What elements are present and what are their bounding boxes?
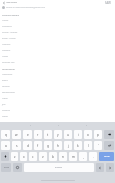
staticText: b (52, 155, 54, 159)
staticText: p (97, 133, 99, 137)
staticText: h (57, 144, 59, 148)
staticText: n (62, 155, 64, 159)
staticText: d (27, 144, 29, 148)
staticText: Other (2, 115, 8, 118)
staticText: Company (2, 25, 12, 28)
button[interactable]: j (64, 141, 72, 150)
staticText: i (78, 133, 79, 137)
button[interactable]: Custom (0, 107, 115, 113)
button[interactable]: g (44, 141, 52, 150)
button[interactable]: h (54, 141, 62, 150)
button[interactable]: Nickname (0, 71, 115, 77)
button[interactable]: Other (0, 113, 115, 119)
button[interactable]: Notes (0, 53, 115, 59)
button[interactable]: Backspace (104, 130, 114, 139)
staticText: Name (2, 19, 9, 22)
staticText: More fields (2, 67, 15, 70)
staticText: o (87, 133, 89, 137)
button[interactable]: Internet call (0, 59, 115, 65)
button[interactable]: ' (94, 141, 102, 150)
button[interactable]: . (89, 152, 97, 161)
staticText: Event (2, 79, 8, 82)
button[interactable]: SAVE (104, 1, 113, 5)
staticText: t (47, 133, 49, 137)
staticText: r (37, 133, 39, 137)
staticText: ' (98, 144, 99, 148)
button[interactable]: Phone · Mobile (0, 29, 115, 35)
button[interactable]: r (34, 130, 42, 139)
button[interactable]: t (44, 130, 52, 139)
button[interactable]: z (11, 152, 18, 161)
button[interactable]: Contact details (0, 11, 115, 17)
staticText: v (42, 155, 44, 159)
button[interactable]: Left (96, 163, 104, 172)
button[interactable]: l (84, 141, 92, 150)
button[interactable]: Groups (0, 83, 115, 89)
button[interactable]: b (49, 152, 57, 161)
button[interactable]: u (64, 130, 72, 139)
staticText: Relationship (2, 91, 15, 94)
staticText: g (47, 144, 49, 148)
button[interactable]: y (54, 130, 62, 139)
staticText: Notes (2, 55, 9, 58)
button[interactable]: n (59, 152, 67, 161)
button[interactable]: Symbols (1, 163, 11, 172)
button[interactable]: w (12, 130, 21, 139)
staticText: l (88, 144, 89, 148)
button[interactable]: k (74, 141, 82, 150)
staticText: New contact (6, 1, 17, 4)
button[interactable]: Enter (104, 141, 114, 150)
button[interactable]: q (1, 130, 10, 139)
button[interactable]: i (74, 130, 82, 139)
staticText: j (68, 144, 69, 148)
staticText: z (14, 155, 16, 159)
button[interactable]: Company (0, 23, 115, 29)
staticText: Groups (2, 85, 10, 88)
button[interactable]: Shift (1, 152, 9, 161)
button[interactable]: Right (106, 163, 114, 172)
staticText: Website (2, 49, 11, 52)
button[interactable]: Back (2, 1, 5, 4)
staticText: y (57, 133, 59, 137)
staticText: w (15, 133, 18, 137)
button[interactable]: o (84, 130, 92, 139)
staticText: x (23, 155, 25, 159)
staticText: , (83, 155, 84, 159)
staticText: Custom (2, 109, 10, 112)
button[interactable]: More fields (0, 65, 115, 71)
staticText: s (16, 144, 18, 148)
button[interactable]: s (12, 141, 21, 150)
staticText: Nickname (2, 73, 13, 76)
staticText: q (5, 133, 7, 137)
staticText: Email · Home (2, 37, 16, 40)
staticText: u (67, 133, 69, 137)
button[interactable]: Website (0, 47, 115, 53)
staticText: m (72, 155, 75, 159)
button[interactable]: a (1, 141, 10, 150)
button[interactable]: Email · Home (0, 35, 115, 41)
button[interactable]: p (94, 130, 102, 139)
button[interactable]: Relationship (0, 89, 115, 95)
button[interactable]: Name (0, 17, 115, 23)
staticText: c (32, 155, 34, 159)
button[interactable]: Emoji (13, 163, 22, 172)
button[interactable]: f (34, 141, 42, 150)
button[interactable]: Done (99, 152, 114, 161)
button[interactable]: v (39, 152, 47, 161)
button[interactable]: x (20, 152, 27, 161)
button[interactable]: Label (0, 95, 115, 101)
staticText: Job (2, 103, 6, 106)
button[interactable]: , (79, 152, 87, 161)
button[interactable]: m (69, 152, 77, 161)
staticText: e (27, 133, 29, 137)
button[interactable]: c (29, 152, 37, 161)
button[interactable]: Saving to user.name.example@gmail.com (0, 5, 115, 10)
button[interactable]: Space (24, 163, 94, 172)
button[interactable]: Event (0, 77, 115, 83)
staticText: Internet call (2, 61, 15, 64)
button[interactable]: Address (0, 41, 115, 47)
button[interactable]: d (23, 141, 32, 150)
button[interactable]: e (23, 130, 32, 139)
staticText: Saving to user.name.example@gmail.com (6, 6, 46, 9)
